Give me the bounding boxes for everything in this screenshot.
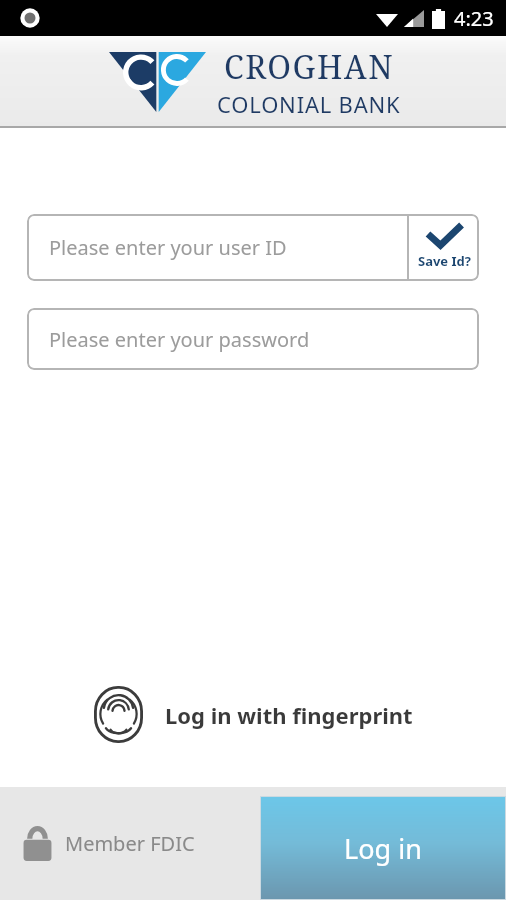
staticText: CROGHAN: [224, 45, 395, 89]
button[interactable]: Log in with fingerprint: [0, 686, 506, 743]
button[interactable]: Save Id: [409, 214, 479, 281]
staticText: COLONIAL BANK: [217, 89, 401, 119]
staticText: Log in with fingerprint: [165, 700, 413, 730]
button[interactable]: Please enter your user ID: [27, 214, 479, 281]
button[interactable]: Member FDIC: [22, 825, 195, 862]
other: Notification: [19, 7, 41, 29]
staticText: Please enter your user ID: [49, 234, 287, 261]
staticText: Member FDIC: [65, 830, 195, 857]
staticText: Please enter your password: [49, 326, 310, 353]
button[interactable]: Log in: [260, 796, 506, 900]
button[interactable]: Please enter your password: [27, 308, 479, 370]
staticText: Save Id?: [418, 252, 471, 270]
staticText: Log in: [344, 830, 422, 867]
staticText: 4:23: [454, 5, 494, 32]
